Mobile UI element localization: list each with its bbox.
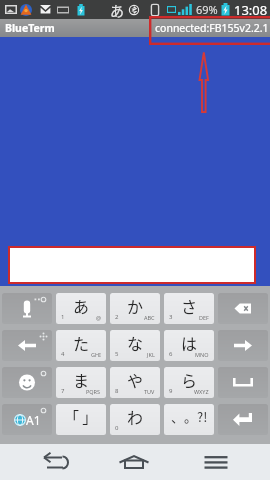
button[interactable]: Switch input mode — [2, 404, 52, 435]
staticText: あ — [73, 294, 90, 317]
staticText: た — [73, 331, 90, 354]
staticText: 3 — [169, 313, 173, 321]
staticText: な — [127, 331, 144, 354]
staticText: 4 — [61, 350, 65, 358]
button[interactable]: Voice input — [2, 293, 52, 324]
staticText: 7 — [61, 387, 65, 395]
button[interactable]: や — [110, 367, 160, 398]
staticText: 0 — [115, 424, 119, 432]
staticText: 「 」 — [64, 406, 98, 428]
staticText: あ — [110, 0, 124, 19]
button[interactable]: Recent apps — [190, 448, 242, 476]
staticText: や — [127, 368, 144, 391]
staticText: 9 — [169, 387, 173, 395]
button[interactable]: Back — [29, 448, 81, 476]
button[interactable]: Home — [108, 448, 160, 476]
staticText: 69% — [196, 2, 218, 17]
button[interactable]: Emoji — [2, 367, 52, 398]
button[interactable]: Move left — [2, 330, 52, 361]
staticText: DEF — [199, 314, 209, 321]
staticText: は — [181, 331, 198, 354]
staticText: 5 — [115, 350, 119, 358]
staticText: か — [127, 294, 144, 317]
staticText: 13:08 — [234, 1, 268, 19]
button[interactable]: か — [110, 293, 160, 324]
staticText: 6 — [169, 350, 173, 358]
staticText: さ — [181, 294, 198, 317]
staticText: GHI — [91, 351, 101, 358]
button[interactable]: 「 」 — [56, 404, 106, 435]
button[interactable]: ら — [164, 367, 214, 398]
staticText: @ — [96, 314, 101, 321]
staticText: MNO — [195, 351, 209, 358]
staticText: BlueTerm — [5, 21, 55, 35]
button[interactable]: Move right — [218, 330, 268, 361]
button[interactable]: さ — [164, 293, 214, 324]
button[interactable]: 、。?! — [164, 404, 214, 435]
button[interactable]: ま — [56, 367, 106, 398]
staticText: TUV — [144, 388, 155, 395]
staticText: connected:FB155v2.2.1 — [155, 21, 269, 35]
staticText: 1 — [61, 313, 65, 321]
staticText: JKL — [147, 351, 155, 358]
button[interactable]: な — [110, 330, 160, 361]
staticText: ら — [181, 368, 198, 391]
button[interactable]: Space — [218, 367, 268, 398]
staticText: 8 — [115, 387, 119, 395]
button[interactable]: Enter — [218, 404, 268, 435]
staticText: ABC — [144, 314, 155, 321]
staticText: ま — [73, 368, 90, 391]
button[interactable]: わ — [110, 404, 160, 435]
staticText: 2 — [115, 313, 119, 321]
button[interactable]: Backspace — [218, 293, 268, 324]
button[interactable]: は — [164, 330, 214, 361]
staticText: わ — [127, 405, 144, 428]
staticText: 、。?! — [171, 407, 208, 426]
button[interactable]: た — [56, 330, 106, 361]
staticText: WXYZ — [194, 388, 209, 395]
staticText: A1 — [26, 412, 41, 428]
staticText: PQRS — [86, 388, 101, 395]
button[interactable]: あ — [56, 293, 106, 324]
